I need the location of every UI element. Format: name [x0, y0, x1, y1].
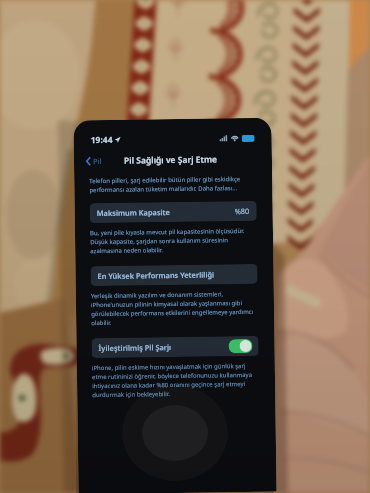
staticText: 19:44: [91, 134, 113, 146]
staticText: Yerleşik dinamik yazılım ve donanım sist…: [91, 290, 258, 327]
staticText: Pil: [93, 156, 102, 166]
staticText: iPhone, pilin eskime hızını yavaşlatmak …: [92, 362, 259, 399]
staticText: En Yüksek Performans Yeterliliği: [97, 269, 215, 281]
button[interactable]: En Yüksek Performans Yeterliliği: [90, 264, 258, 286]
staticText: Telefon pilleri, şarj edilebilir bütün p…: [89, 175, 256, 194]
staticText: %80: [235, 206, 250, 216]
button[interactable]: Maksimum Kapasite: [90, 201, 257, 223]
button[interactable]: İyileştirilmiş Pil Şarjı: [91, 336, 259, 358]
staticText: Bu, yeni pile kıyasla mevcut pil kapasit…: [90, 227, 257, 255]
staticText: Maksimum Kapasite: [97, 207, 171, 218]
button[interactable]: Optimized battery charging toggle: [228, 339, 253, 353]
button[interactable]: Pil: [84, 154, 104, 168]
staticText: İyileştirilmiş Pil Şarjı: [98, 342, 172, 353]
staticText: Pil Sağlığı ve Şarj Etme: [124, 153, 218, 167]
